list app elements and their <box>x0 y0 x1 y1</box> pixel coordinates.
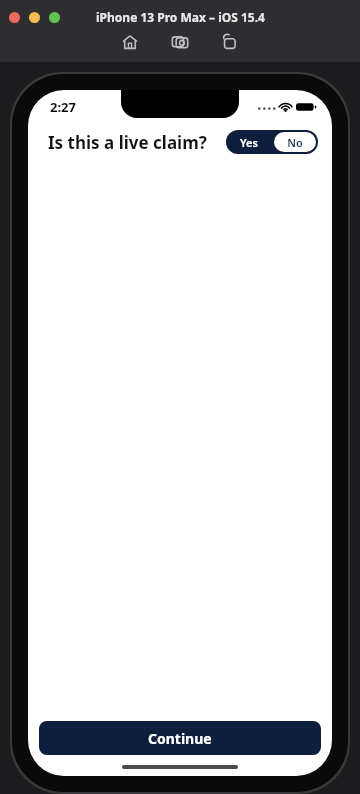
button[interactable]: Continue <box>39 721 321 755</box>
button[interactable]: Close <box>9 12 20 23</box>
staticText: Yes <box>240 135 258 150</box>
staticText: Is this a live claim? <box>48 131 207 154</box>
button[interactable]: Home <box>119 31 141 53</box>
button[interactable]: Screenshot <box>169 31 191 53</box>
staticText: 2:27 <box>50 98 76 116</box>
staticText: iPhone 13 Pro Max – iOS 15.4 <box>96 9 265 25</box>
staticText: No <box>287 135 303 150</box>
button[interactable]: Rotate <box>219 31 241 53</box>
button[interactable]: Zoom <box>49 12 60 23</box>
button[interactable]: Yes <box>226 130 272 154</box>
button[interactable]: No <box>274 132 316 152</box>
staticText: Continue <box>148 729 212 748</box>
button[interactable]: Minimise <box>29 12 40 23</box>
